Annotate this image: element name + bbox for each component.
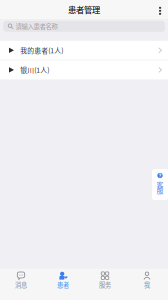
staticText: 服 <box>156 185 163 195</box>
staticText: ? <box>158 172 161 179</box>
staticText: 银川(1人) <box>20 65 49 75</box>
staticText: 消息 <box>15 280 27 289</box>
button[interactable]: 消息 <box>0 268 42 300</box>
staticText: 服务 <box>99 280 111 289</box>
staticText: 我 <box>144 280 150 289</box>
button[interactable]: 我的患者(1人) <box>0 41 168 60</box>
button[interactable]: More options <box>154 0 167 20</box>
button[interactable]: 服务 <box>84 268 126 300</box>
staticText: 患者管理 <box>68 3 100 15</box>
staticText: 请输入患者名称 <box>16 22 58 31</box>
staticText: 患者 <box>57 280 69 289</box>
staticText: 客 <box>156 179 163 189</box>
button[interactable]: 银川(1人) <box>0 60 168 79</box>
button[interactable]: 我 <box>126 268 168 300</box>
staticText: 我的患者(1人) <box>20 45 63 55</box>
button[interactable]: 请输入患者名称 <box>3 21 165 32</box>
button[interactable]: 客服 <box>152 169 168 200</box>
button[interactable]: 患者 <box>42 268 84 300</box>
